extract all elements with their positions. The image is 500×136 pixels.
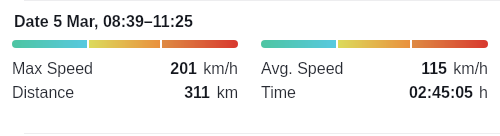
button[interactable]: Date 5 Mar, 08:39–11:25 [0, 0, 500, 136]
staticText: 311 [184, 84, 210, 102]
staticText: h [479, 84, 488, 102]
staticText: Avg. Speed [261, 60, 344, 78]
staticText: Date 5 Mar, 08:39–11:25 [14, 13, 193, 31]
staticText: km/h [203, 60, 238, 78]
staticText: 115 [421, 60, 447, 78]
staticText: Max Speed [12, 60, 93, 78]
staticText: km/h [453, 60, 488, 78]
staticText: Distance [12, 84, 75, 102]
staticText: 201 [170, 60, 197, 78]
staticText: Time [261, 84, 296, 102]
staticText: km [216, 84, 238, 102]
staticText: 02:45:05 [408, 84, 473, 102]
